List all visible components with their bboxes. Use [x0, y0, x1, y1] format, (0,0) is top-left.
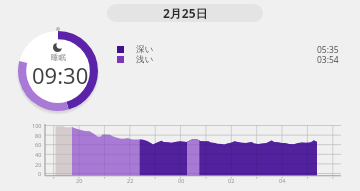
staticText: 22 — [127, 177, 134, 184]
staticText: 02 — [228, 177, 235, 184]
staticText: 05:35 — [317, 44, 339, 55]
staticText: 睡眠 — [51, 53, 66, 62]
staticText: 浅い — [136, 54, 154, 65]
button[interactable]: 2月25日 — [107, 4, 263, 22]
staticText: 20 — [76, 177, 83, 184]
staticText: 20 — [35, 161, 42, 168]
staticText: 00 — [178, 177, 185, 184]
staticText: 0 — [38, 170, 42, 177]
staticText: 03:54 — [317, 54, 339, 65]
staticText: 09:30 — [32, 60, 89, 90]
staticText: 60 — [35, 141, 42, 148]
button[interactable]: 深い — [113, 44, 343, 55]
staticText: 100 — [32, 122, 42, 129]
staticText: 2月25日 — [163, 5, 208, 21]
staticText: 80 — [35, 132, 42, 139]
staticText: 深い — [136, 44, 154, 55]
button[interactable]: Sleep summary 09:30 — [18, 31, 98, 111]
staticText: 04 — [279, 177, 286, 184]
button[interactable]: 浅い — [113, 54, 343, 65]
staticText: 40 — [35, 151, 42, 158]
